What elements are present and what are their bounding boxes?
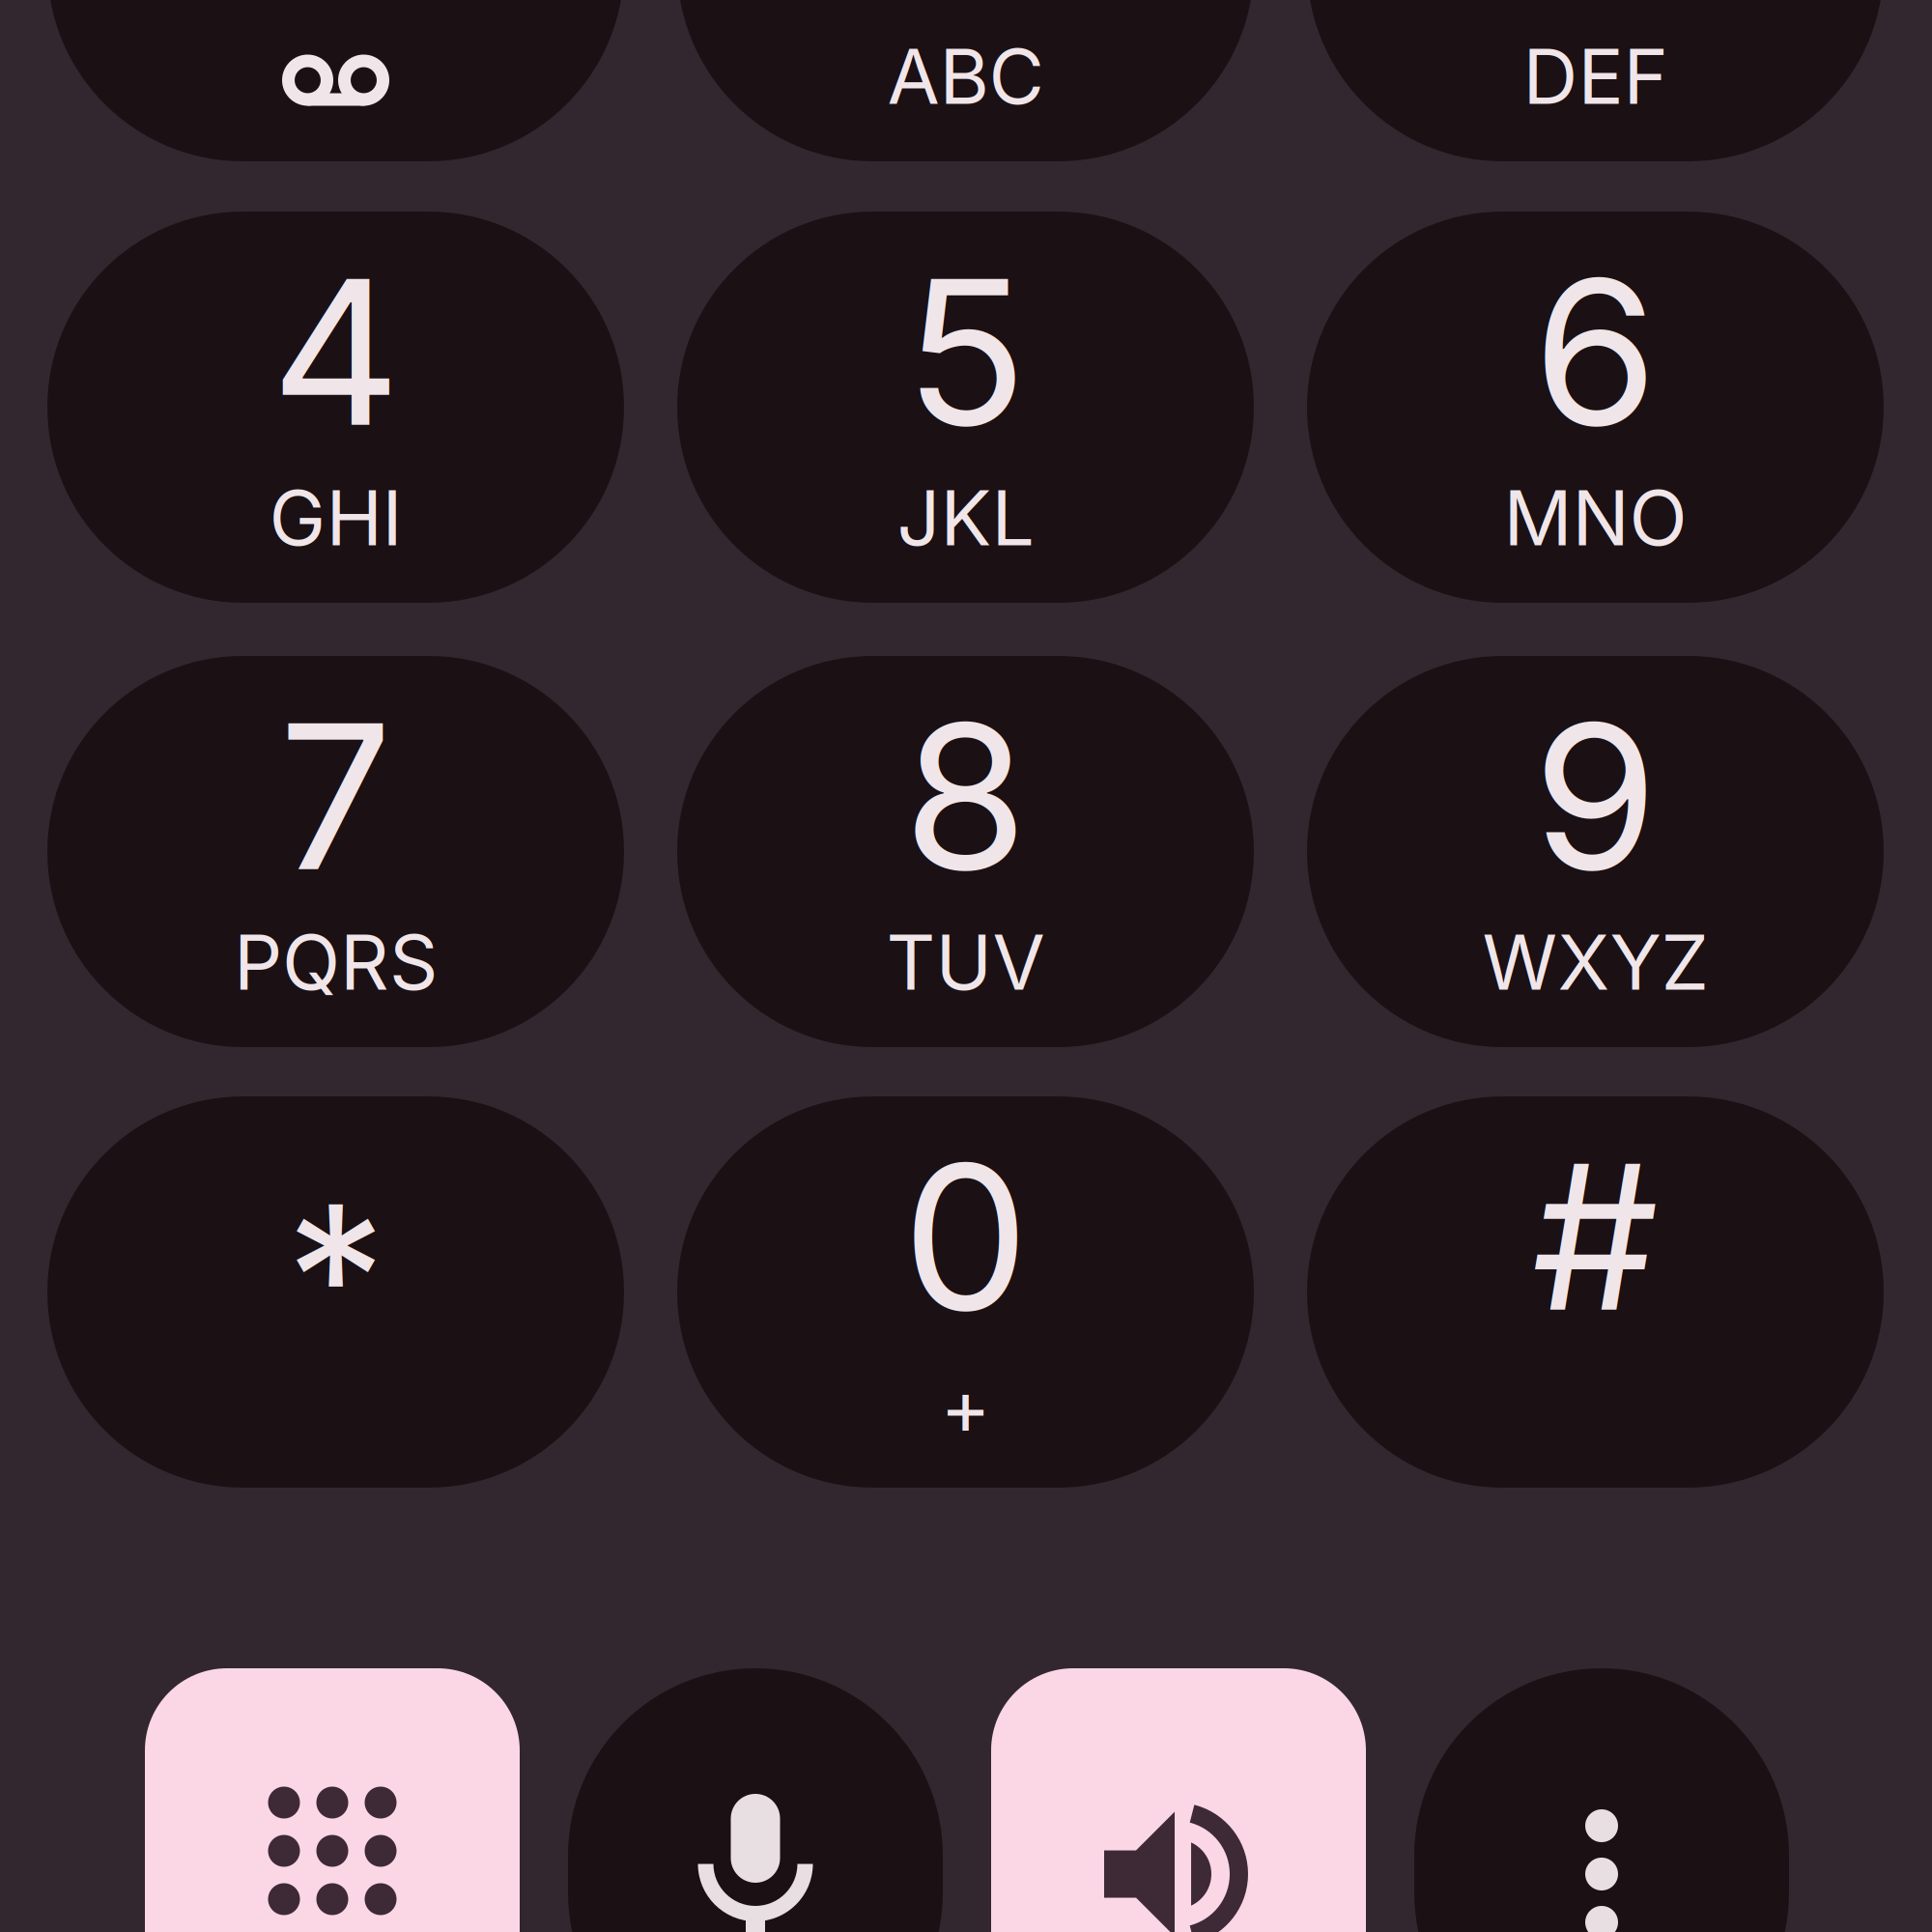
staticText: # <box>1532 1115 1659 1358</box>
button[interactable]: 5 <box>677 212 1254 603</box>
staticText: 7 <box>279 674 393 918</box>
staticText: 5 <box>905 230 1026 473</box>
button[interactable]: Mute <box>568 1668 943 1932</box>
staticText: DEF <box>1523 30 1668 122</box>
staticText: JKL <box>897 472 1034 564</box>
staticText: ABC <box>887 30 1044 122</box>
button[interactable]: 4 <box>47 212 624 603</box>
staticText: * <box>285 1156 386 1399</box>
staticText: + <box>940 1361 991 1452</box>
button[interactable]: Speaker <box>991 1668 1366 1932</box>
staticText: 4 <box>271 230 400 473</box>
button[interactable]: 3 <box>1307 0 1884 161</box>
button[interactable]: * <box>47 1096 624 1488</box>
button[interactable]: 6 <box>1307 212 1884 603</box>
button[interactable]: # <box>1307 1096 1884 1488</box>
staticText: WXYZ <box>1482 916 1708 1008</box>
staticText: MNO <box>1504 472 1687 564</box>
button[interactable]: 8 <box>677 656 1254 1047</box>
button[interactable]: Hide keypad <box>145 1668 520 1932</box>
button[interactable]: More options <box>1414 1668 1789 1932</box>
button[interactable]: 2 <box>677 0 1254 161</box>
button[interactable]: 1 <box>47 0 624 161</box>
staticText: PQRS <box>234 916 438 1008</box>
button[interactable]: 7 <box>47 656 624 1047</box>
button[interactable]: 0 <box>677 1096 1254 1488</box>
staticText: GHI <box>269 472 402 564</box>
staticText: 9 <box>1533 674 1658 918</box>
staticText: 0 <box>902 1115 1029 1358</box>
button[interactable]: 9 <box>1307 656 1884 1047</box>
staticText: 6 <box>1533 230 1658 473</box>
staticText: TUV <box>886 916 1045 1008</box>
staticText: 8 <box>903 674 1028 918</box>
